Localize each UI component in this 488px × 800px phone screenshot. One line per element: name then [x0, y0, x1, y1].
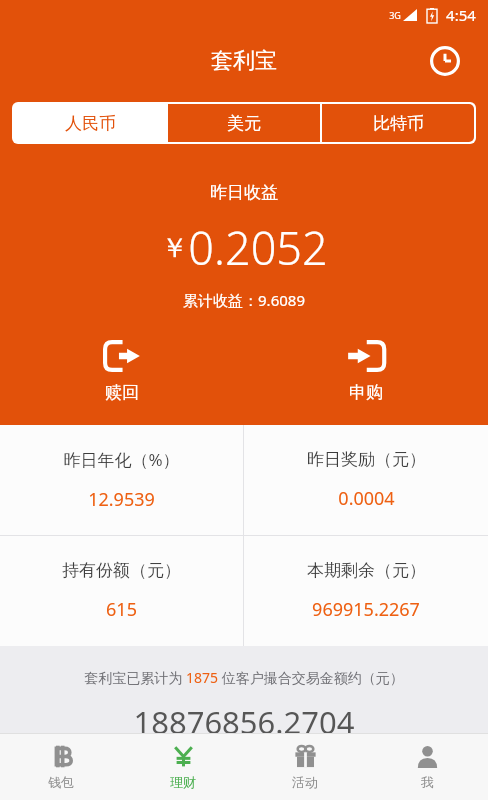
button[interactable]: 本期剩余（元） — [244, 536, 488, 646]
staticText: 0.2052 — [188, 217, 328, 278]
staticText: 申购 — [349, 382, 383, 403]
staticText: 赎回 — [105, 382, 139, 403]
staticText: ￥ — [161, 231, 188, 265]
staticText: 理财 — [170, 774, 196, 790]
button[interactable]: 人民币 — [14, 104, 166, 142]
button[interactable]: 昨日奖励（元） — [244, 425, 488, 535]
staticText: 4:54 — [446, 5, 476, 25]
staticText: 活动 — [292, 774, 318, 790]
button[interactable]: 持有份额（元） — [0, 536, 243, 646]
button[interactable]: History — [424, 40, 466, 82]
staticText: 昨日奖励（元） — [307, 449, 426, 470]
staticText: 昨日年化（%） — [63, 448, 180, 471]
staticText: 615 — [106, 597, 137, 622]
button[interactable]: 昨日年化（%） — [0, 425, 243, 535]
button[interactable]: 理财 — [122, 734, 244, 800]
staticText: 套利宝 — [211, 47, 277, 75]
staticText: 12.9539 — [88, 487, 155, 512]
staticText: 持有份额（元） — [62, 560, 181, 581]
staticText: 累计收益：9.6089 — [183, 290, 305, 310]
button[interactable]: 活动 — [244, 734, 366, 800]
staticText: 18876856.2704 — [133, 701, 355, 743]
staticText: 969915.2267 — [312, 597, 420, 622]
staticText: 美元 — [227, 113, 261, 134]
button[interactable]: 赎回 — [0, 336, 244, 407]
button[interactable]: 美元 — [168, 104, 320, 142]
staticText: 0.0004 — [338, 486, 395, 511]
staticText: 比特币 — [373, 113, 424, 134]
staticText: 钱包 — [48, 774, 74, 790]
button[interactable]: 比特币 — [322, 104, 474, 142]
button[interactable]: 申购 — [244, 336, 488, 407]
staticText: 人民币 — [65, 113, 116, 134]
staticText: 昨日收益 — [210, 182, 278, 203]
staticText: 我 — [421, 774, 434, 790]
button[interactable]: 钱包 — [0, 734, 122, 800]
staticText: 套利宝已累计为 1875 位客户撮合交易金额约（元） — [84, 668, 404, 687]
button[interactable]: 我 — [366, 734, 488, 800]
staticText: 本期剩余（元） — [307, 560, 426, 581]
staticText: 3G — [389, 9, 401, 21]
